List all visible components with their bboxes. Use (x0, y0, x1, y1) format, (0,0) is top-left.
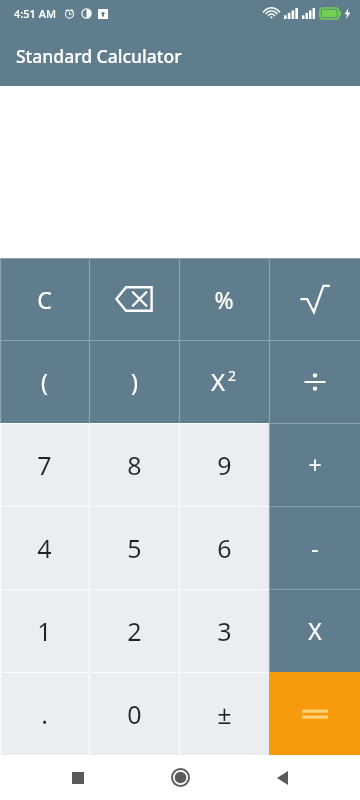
button[interactable]: Home (156, 755, 204, 800)
staticText: ) (131, 366, 138, 397)
button[interactable]: ( (0, 340, 89, 423)
staticText: 2 (127, 614, 142, 648)
button[interactable]: 3 (179, 589, 269, 672)
staticText: % (214, 284, 234, 315)
staticText: 3 (217, 614, 232, 648)
button[interactable]: . (0, 672, 89, 755)
button[interactable]: Recents (54, 755, 102, 800)
button[interactable]: % (179, 258, 269, 340)
button[interactable]: - (269, 506, 360, 589)
button[interactable]: ) (89, 340, 179, 423)
staticText: . (41, 697, 48, 731)
staticText: 4:51 AM (14, 6, 57, 21)
button[interactable]: 1 (0, 589, 89, 672)
staticText: ± (217, 697, 232, 731)
staticText: ( (41, 366, 48, 397)
button[interactable]: 6 (179, 506, 269, 589)
button[interactable]: 2 (89, 589, 179, 672)
button[interactable]: 7 (0, 423, 89, 506)
staticText: Standard Calculator (16, 44, 182, 68)
staticText: 8 (127, 448, 142, 482)
staticText: 6 (217, 531, 232, 565)
button[interactable]: C (0, 258, 89, 340)
staticText: X (211, 365, 226, 398)
button[interactable]: Backspace (89, 258, 179, 340)
staticText: - (311, 532, 319, 563)
staticText: 5 (127, 531, 142, 565)
staticText: C (37, 284, 52, 315)
button[interactable]: ± (179, 672, 269, 755)
button[interactable]: 9 (179, 423, 269, 506)
button[interactable]: + (269, 423, 360, 506)
staticText: 0 (127, 697, 142, 731)
staticText: X (308, 615, 322, 646)
button[interactable]: Square (179, 340, 269, 423)
button[interactable]: 5 (89, 506, 179, 589)
staticText: + (308, 449, 322, 480)
button[interactable]: 0 (89, 672, 179, 755)
button[interactable]: Square root (269, 258, 360, 340)
button[interactable]: 4 (0, 506, 89, 589)
button[interactable]: 8 (89, 423, 179, 506)
staticText: 9 (217, 448, 232, 482)
staticText: 1 (37, 614, 52, 648)
button[interactable]: Divide (269, 340, 360, 423)
button[interactable]: Equals (269, 672, 360, 755)
staticText: 4 (37, 531, 52, 565)
staticText: 7 (37, 448, 52, 482)
staticText: 2 (228, 366, 237, 385)
button[interactable]: Back (258, 755, 306, 800)
button[interactable]: X (269, 589, 360, 672)
